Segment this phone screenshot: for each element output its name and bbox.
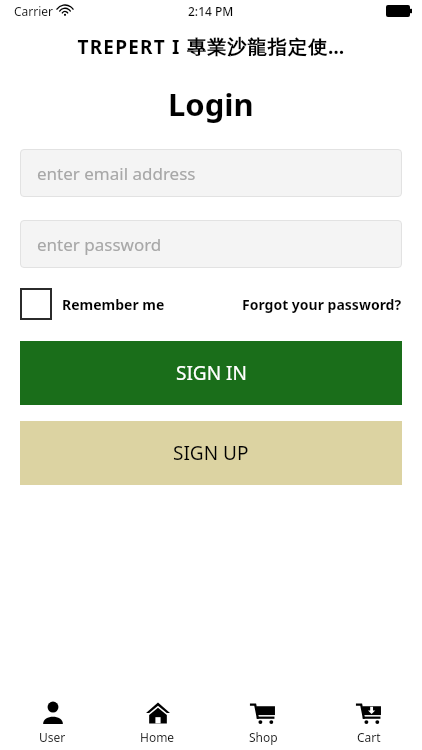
staticText: Login [168, 83, 254, 125]
staticText: User [39, 729, 66, 745]
staticText: 2:14 PM [188, 3, 234, 19]
button[interactable]: User [0, 694, 105, 750]
button[interactable]: Home [105, 694, 210, 750]
staticText: enter password [37, 233, 162, 256]
staticText: TREPERT I 專業沙龍指定使… [77, 34, 346, 60]
staticText: SIGN IN [176, 360, 247, 386]
button[interactable]: Shop [210, 694, 316, 750]
button[interactable]: SIGN UP [20, 421, 402, 485]
staticText: Home [140, 729, 175, 745]
button[interactable]: enter password [20, 220, 402, 268]
staticText: Remember me [62, 295, 165, 314]
button[interactable]: enter email address [20, 149, 402, 197]
staticText: enter email address [37, 162, 196, 185]
staticText: Carrier [14, 3, 54, 19]
button[interactable]: Cart [316, 694, 422, 750]
staticText: Cart [357, 729, 381, 745]
staticText: SIGN UP [173, 440, 249, 466]
button[interactable]: SIGN IN [20, 341, 402, 405]
staticText: Shop [249, 729, 278, 745]
button[interactable]: Forgot your password? [242, 295, 402, 314]
button[interactable]: Remember me [20, 288, 165, 320]
